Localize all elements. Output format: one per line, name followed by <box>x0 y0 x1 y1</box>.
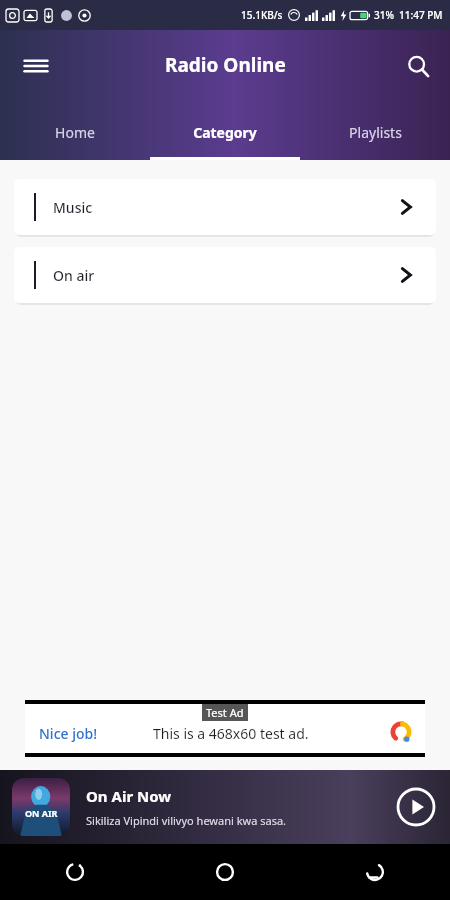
button[interactable]: Music <box>14 179 436 235</box>
staticText: Test Ad <box>206 705 244 720</box>
button[interactable]: Home <box>0 104 150 160</box>
staticText: On Air Now <box>86 786 172 806</box>
staticText: Radio Online <box>165 52 286 78</box>
staticText: ON AIR <box>25 807 58 819</box>
button[interactable]: ON AIR <box>0 770 450 844</box>
staticText: Playlists <box>349 123 402 142</box>
button[interactable]: On air <box>14 247 436 303</box>
staticText: Nice job! <box>39 724 98 743</box>
staticText: On air <box>53 266 95 285</box>
staticText: Music <box>53 198 93 217</box>
button[interactable]: Play <box>388 779 444 835</box>
staticText: Home <box>55 123 95 142</box>
button[interactable]: Home <box>150 844 300 900</box>
staticText: Sikiliza Vipindi vilivyo hewani kwa sasa… <box>86 813 287 828</box>
button[interactable]: Search <box>396 44 440 88</box>
staticText: Category <box>193 123 257 142</box>
staticText: This is a 468x60 test ad. <box>153 724 309 743</box>
staticText: 15.1KB/s <box>241 8 283 22</box>
button[interactable]: Back <box>300 844 450 900</box>
button[interactable]: Playlists <box>300 104 450 160</box>
button[interactable]: Recents <box>0 844 150 900</box>
staticText: 11:47 PM <box>399 8 443 22</box>
button[interactable]: Category <box>150 104 300 160</box>
button[interactable]: Open navigation menu <box>14 44 58 88</box>
button[interactable]: Test Ad <box>25 700 425 757</box>
staticText: 31% <box>374 8 394 22</box>
